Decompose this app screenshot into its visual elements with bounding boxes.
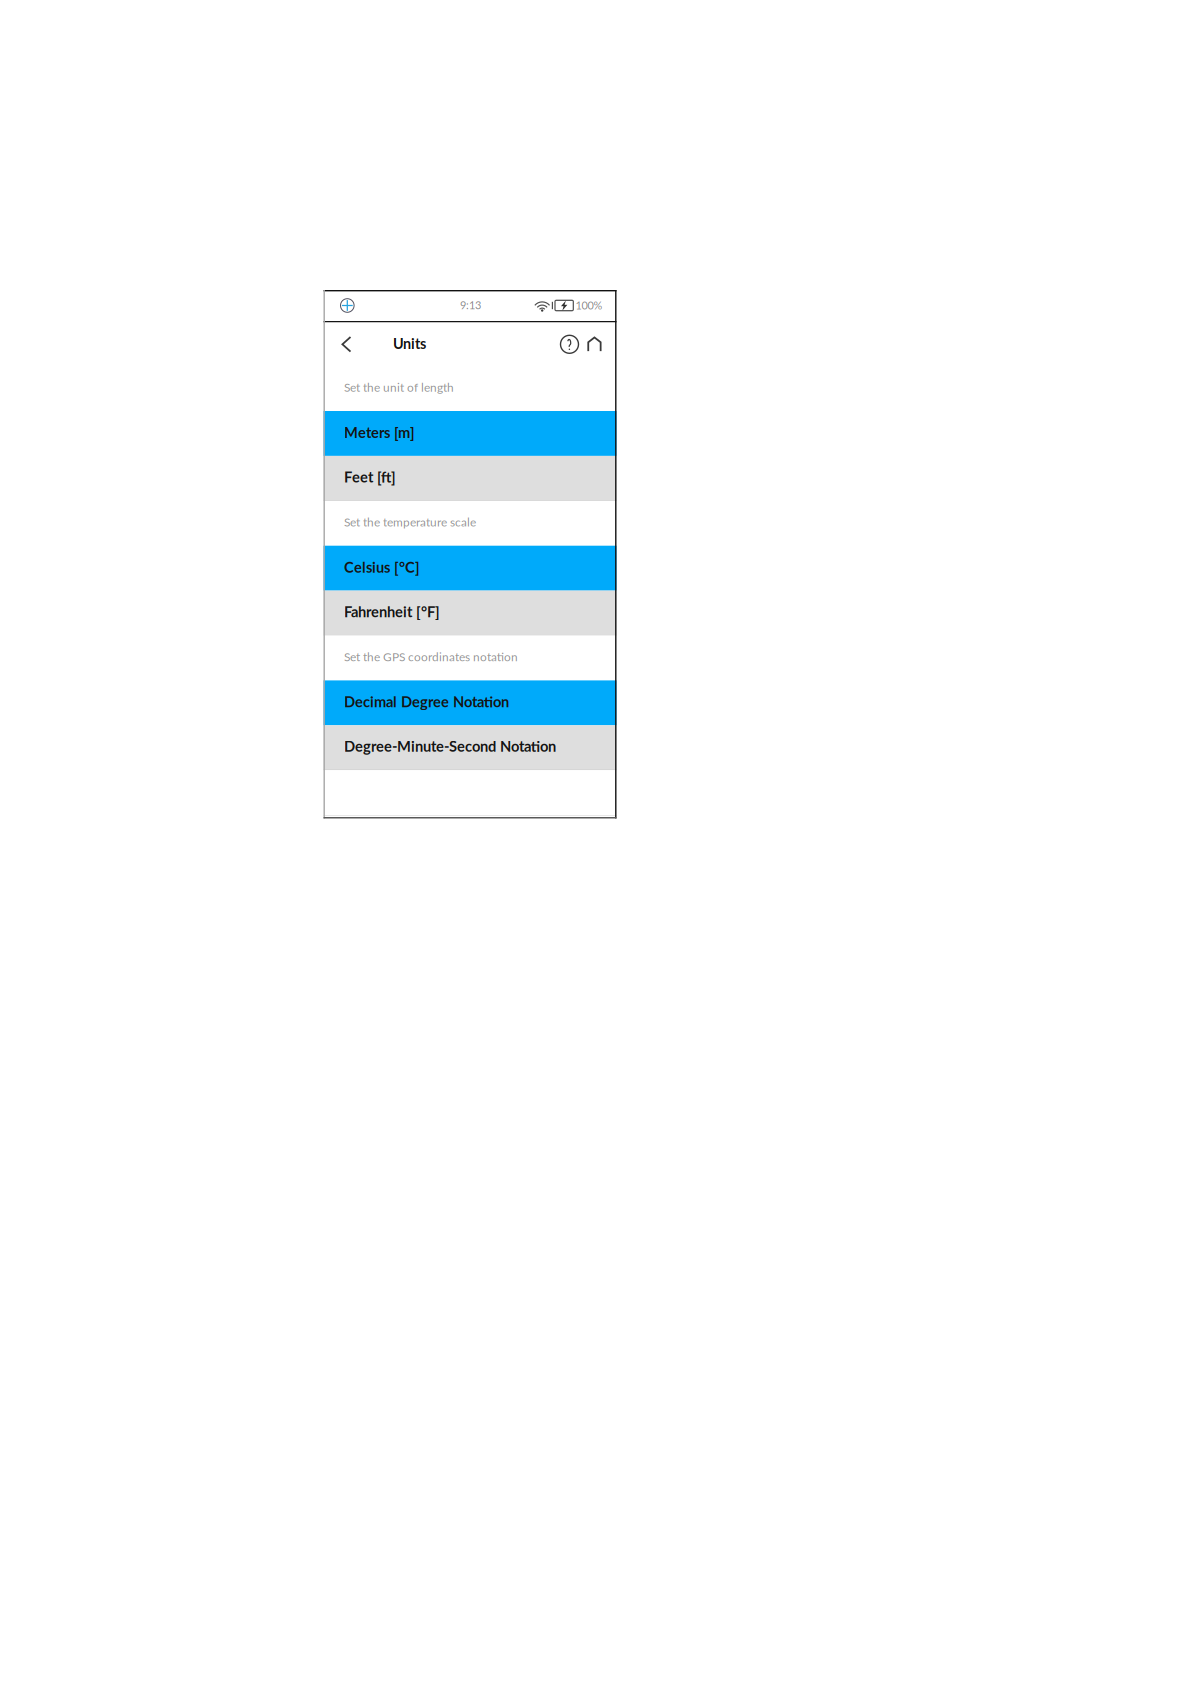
staticText: 100%	[575, 299, 602, 312]
staticText: 9:13	[460, 298, 481, 312]
staticText: Fahrenheit [°F]	[344, 603, 440, 620]
staticText: Decimal Degree Notation	[344, 693, 509, 710]
button[interactable]: Back	[333, 322, 360, 366]
staticText: Celsius [°C]	[344, 558, 420, 576]
button[interactable]: Decimal Degree Notation	[323, 680, 616, 725]
button[interactable]: Fahrenheit [°F]	[323, 591, 616, 635]
staticText: Units	[393, 335, 426, 352]
button[interactable]: Feet [ft]	[323, 456, 616, 501]
button[interactable]: Celsius [°C]	[323, 546, 616, 591]
staticText: Feet [ft]	[344, 468, 396, 485]
button[interactable]: Degree-Minute-Second Notation	[323, 725, 616, 770]
button[interactable]: Home	[582, 322, 606, 366]
button[interactable]: Meters [m]	[323, 411, 616, 456]
staticText: Degree-Minute-Second Notation	[344, 737, 556, 755]
staticText: Set the GPS coordinates notation	[344, 649, 518, 664]
staticText: Set the temperature scale	[344, 515, 476, 529]
button[interactable]: Help	[556, 322, 582, 366]
staticText: Meters [m]	[344, 423, 415, 441]
staticText: Set the unit of length	[344, 380, 454, 394]
